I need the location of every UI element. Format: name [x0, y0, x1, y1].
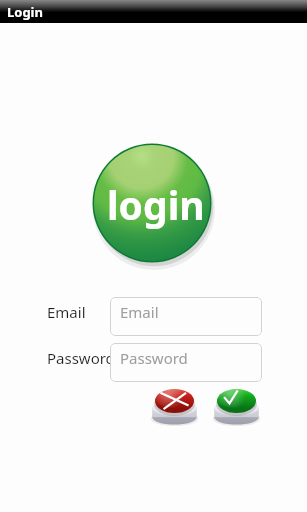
button[interactable]: Email: [47, 297, 86, 336]
staticText: Email: [120, 302, 159, 322]
button[interactable]: login: [91, 142, 213, 264]
button[interactable]: Email: [110, 297, 262, 336]
button[interactable]: Password: [110, 343, 262, 382]
button[interactable]: Cancel: [152, 384, 197, 425]
staticText: Email: [47, 302, 86, 322]
staticText: login: [107, 178, 205, 231]
staticText: Password: [47, 348, 115, 368]
staticText: Password: [120, 348, 188, 368]
staticText: Login: [7, 3, 43, 21]
button[interactable]: OK: [214, 384, 259, 425]
button[interactable]: Password: [47, 343, 115, 382]
